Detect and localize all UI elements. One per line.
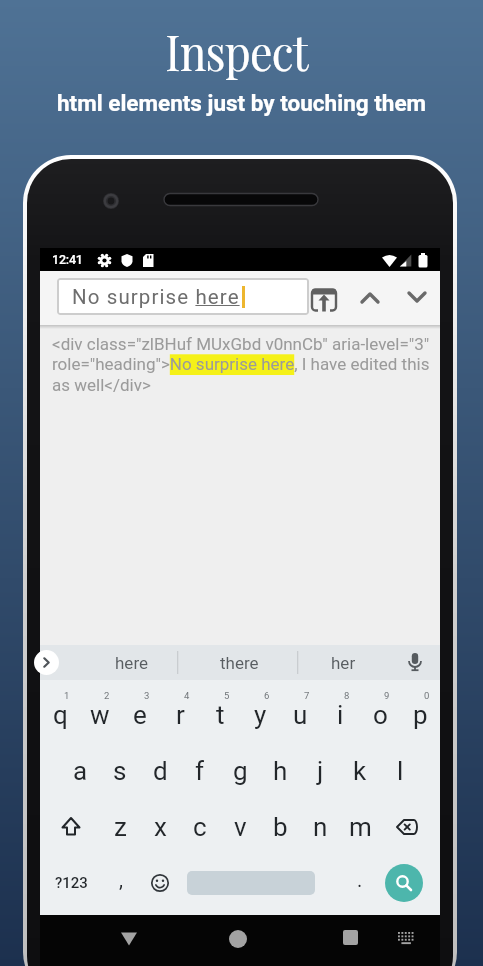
staticText: o xyxy=(373,700,388,730)
button[interactable]: k xyxy=(340,745,380,797)
button[interactable]: c xyxy=(180,801,220,853)
button[interactable] xyxy=(350,280,390,316)
button[interactable] xyxy=(384,917,428,965)
button[interactable]: y xyxy=(240,689,280,741)
staticText: 4 xyxy=(184,690,190,701)
button[interactable]: h xyxy=(260,745,300,797)
staticText: html elements just by touching them xyxy=(0,90,483,116)
staticText: z xyxy=(114,812,127,842)
button[interactable]: o xyxy=(360,689,400,741)
button[interactable]: m xyxy=(340,801,380,853)
staticText: 12:41 xyxy=(52,252,83,267)
staticText: f xyxy=(195,756,205,786)
staticText: a xyxy=(73,756,88,786)
button[interactable]: ?123 xyxy=(40,857,102,909)
button[interactable]: v xyxy=(220,801,260,853)
button[interactable]: p xyxy=(400,689,440,741)
button[interactable]: n xyxy=(300,801,340,853)
staticText: e xyxy=(133,700,147,730)
button[interactable] xyxy=(34,650,59,675)
staticText: h xyxy=(273,756,288,786)
button[interactable] xyxy=(397,645,433,680)
staticText: No surprise here xyxy=(72,285,240,309)
staticText: q xyxy=(53,700,68,730)
button[interactable] xyxy=(304,280,344,316)
button[interactable]: r xyxy=(160,689,200,741)
staticText: there xyxy=(220,653,259,673)
button[interactable]: x xyxy=(140,801,180,853)
button[interactable]: q xyxy=(40,689,80,741)
button[interactable] xyxy=(40,801,100,853)
button[interactable]: u xyxy=(280,689,320,741)
staticText: i xyxy=(337,700,344,730)
staticText: 3 xyxy=(144,690,150,701)
button[interactable] xyxy=(385,864,423,902)
staticText: n xyxy=(313,812,328,842)
staticText: 5 xyxy=(224,690,230,701)
staticText: u xyxy=(293,700,308,730)
button[interactable]: there xyxy=(204,645,274,680)
staticText: v xyxy=(234,812,247,842)
staticText: x xyxy=(154,812,167,842)
button[interactable] xyxy=(326,917,374,965)
staticText: 9 xyxy=(384,690,390,701)
staticText: 0 xyxy=(424,690,430,701)
button[interactable]: i xyxy=(320,689,360,741)
staticText: c xyxy=(193,812,207,842)
button[interactable]: d xyxy=(140,745,180,797)
button[interactable]: here xyxy=(96,645,166,680)
button[interactable]: e xyxy=(120,689,160,741)
staticText: 2 xyxy=(104,690,110,701)
button[interactable]: , xyxy=(102,857,140,909)
staticText: y xyxy=(254,700,267,730)
staticText: here xyxy=(115,653,148,673)
staticText: w xyxy=(90,700,110,730)
staticText: . xyxy=(357,868,363,891)
staticText: 8 xyxy=(344,690,350,701)
button[interactable]: her xyxy=(308,645,378,680)
staticText: 1 xyxy=(64,690,70,701)
staticText: l xyxy=(397,756,404,786)
staticText: ?123 xyxy=(55,874,88,892)
staticText: m xyxy=(349,812,372,842)
staticText: , xyxy=(119,868,123,891)
staticText: s xyxy=(113,756,127,786)
staticText: t xyxy=(216,700,225,730)
button[interactable]: f xyxy=(180,745,220,797)
button[interactable]: b xyxy=(260,801,300,853)
button[interactable]: g xyxy=(220,745,260,797)
button[interactable]: s xyxy=(100,745,140,797)
button[interactable] xyxy=(397,280,437,316)
staticText: k xyxy=(353,756,367,786)
button[interactable]: a xyxy=(60,745,100,797)
button[interactable] xyxy=(214,917,262,965)
button[interactable]: . xyxy=(340,857,380,909)
button[interactable]: t xyxy=(200,689,240,741)
button[interactable]: j xyxy=(300,745,340,797)
staticText: g xyxy=(233,756,248,786)
button[interactable]: l xyxy=(380,745,420,797)
staticText: <div class="zlBHuf MUxGbd v0nnCb" aria-l… xyxy=(52,334,430,396)
staticText: r xyxy=(176,700,185,730)
button[interactable] xyxy=(140,857,180,909)
button[interactable]: w xyxy=(80,689,120,741)
button[interactable]: No surprise here xyxy=(57,278,309,315)
staticText: 7 xyxy=(304,690,310,701)
staticText: Inspect xyxy=(17,18,456,83)
staticText: p xyxy=(413,700,428,730)
staticText: d xyxy=(153,756,168,786)
staticText: her xyxy=(331,653,356,673)
button[interactable]: z xyxy=(100,801,140,853)
staticText: b xyxy=(273,812,288,842)
staticText: j xyxy=(317,756,324,786)
button[interactable] xyxy=(105,917,153,965)
staticText: 6 xyxy=(264,690,270,701)
button[interactable] xyxy=(380,801,440,853)
